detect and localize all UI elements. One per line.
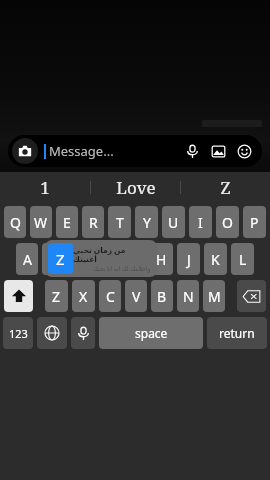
button[interactable]: Z bbox=[181, 172, 270, 203]
button[interactable]: E bbox=[56, 206, 78, 238]
button[interactable]: P bbox=[243, 206, 266, 238]
button[interactable]: Y bbox=[135, 206, 158, 238]
button[interactable]: space bbox=[99, 317, 203, 349]
button[interactable]: J bbox=[177, 243, 200, 275]
button[interactable]: C bbox=[99, 280, 121, 312]
staticText: M bbox=[208, 287, 221, 306]
staticText: X bbox=[79, 287, 88, 306]
staticText: E bbox=[63, 213, 71, 232]
button[interactable]: F bbox=[96, 243, 119, 275]
button[interactable]: M bbox=[203, 280, 225, 312]
button[interactable]: Backspace bbox=[237, 280, 266, 312]
button[interactable]: R bbox=[82, 206, 104, 238]
staticText: L bbox=[239, 250, 247, 269]
staticText: C bbox=[106, 287, 115, 306]
staticText: Z bbox=[56, 249, 65, 269]
staticText: B bbox=[157, 287, 167, 306]
staticText: T bbox=[116, 213, 124, 232]
staticText: من زمان تحبي أغنيتك bbox=[73, 245, 151, 264]
button[interactable]: H bbox=[150, 243, 173, 275]
staticText: H bbox=[156, 250, 167, 269]
staticText: O bbox=[222, 213, 233, 232]
button[interactable]: Camera bbox=[8, 135, 262, 167]
button[interactable]: G bbox=[123, 243, 146, 275]
staticText: F bbox=[104, 250, 112, 269]
staticText: A bbox=[23, 250, 32, 269]
button[interactable]: Stickers bbox=[232, 139, 256, 163]
staticText: Z bbox=[220, 176, 231, 199]
button[interactable]: Love bbox=[91, 172, 180, 203]
staticText: واحلامك لك انه انا بحبك bbox=[93, 265, 151, 273]
button[interactable]: I bbox=[189, 206, 212, 238]
staticText: N bbox=[183, 287, 194, 306]
button[interactable]: S bbox=[42, 243, 65, 275]
staticText: space bbox=[135, 325, 168, 341]
staticText: P bbox=[250, 213, 259, 232]
button[interactable]: Change keyboard language bbox=[37, 317, 67, 349]
button[interactable]: Z bbox=[45, 280, 68, 312]
staticText: V bbox=[132, 287, 141, 306]
button[interactable]: T bbox=[108, 206, 131, 238]
button[interactable]: Photos bbox=[206, 139, 230, 163]
button[interactable]: 123 bbox=[3, 317, 33, 349]
staticText: U bbox=[168, 213, 179, 232]
staticText: S bbox=[50, 250, 58, 269]
button[interactable]: Camera bbox=[12, 138, 38, 164]
button[interactable]: A bbox=[16, 243, 38, 275]
button[interactable]: O bbox=[216, 206, 239, 238]
button[interactable]: Z bbox=[45, 240, 157, 277]
button[interactable]: U bbox=[162, 206, 185, 238]
button[interactable]: K bbox=[204, 243, 227, 275]
staticText: J bbox=[187, 250, 191, 269]
staticText: 123 bbox=[9, 326, 28, 341]
staticText: W bbox=[34, 213, 48, 232]
staticText: Message... bbox=[49, 142, 114, 160]
button[interactable]: B bbox=[151, 280, 173, 312]
button[interactable]: 1 bbox=[0, 172, 90, 203]
staticText: I bbox=[198, 213, 203, 232]
button[interactable]: V bbox=[125, 280, 147, 312]
button[interactable]: Shift bbox=[4, 280, 33, 312]
button[interactable]: Voice message bbox=[180, 139, 204, 163]
staticText: R bbox=[89, 213, 98, 232]
button[interactable]: Q bbox=[4, 206, 26, 238]
button[interactable]: return bbox=[207, 317, 267, 349]
staticText: Love bbox=[116, 176, 156, 199]
staticText: Z bbox=[52, 287, 61, 306]
button[interactable]: W bbox=[30, 206, 52, 238]
staticText: D bbox=[75, 250, 86, 269]
button[interactable]: Voice input bbox=[71, 317, 95, 349]
staticText: Q bbox=[10, 213, 21, 232]
button[interactable]: L bbox=[231, 243, 254, 275]
button[interactable]: D bbox=[69, 243, 92, 275]
staticText: K bbox=[211, 250, 220, 269]
staticText: Y bbox=[143, 213, 151, 232]
button[interactable]: X bbox=[72, 280, 95, 312]
staticText: return bbox=[219, 325, 255, 341]
button[interactable]: N bbox=[177, 280, 199, 312]
staticText: 1 bbox=[40, 176, 50, 199]
